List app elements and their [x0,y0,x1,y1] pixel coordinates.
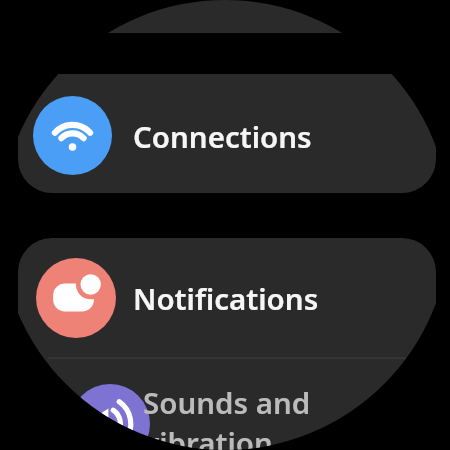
button[interactable]: Connections [18,74,436,193]
button[interactable]: Sounds and vibration [18,359,436,450]
button[interactable]: Notifications [18,238,436,357]
